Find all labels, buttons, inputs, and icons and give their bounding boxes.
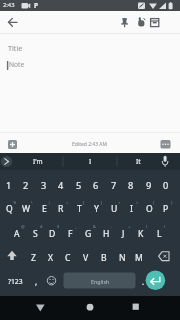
button[interactable]: [35, 170, 52, 195]
button[interactable]: [24, 244, 42, 269]
button[interactable]: [133, 13, 149, 33]
button[interactable]: [4, 12, 22, 32]
staticText: G: [85, 228, 92, 240]
button[interactable]: [158, 136, 174, 152]
button[interactable]: [18, 195, 35, 220]
button[interactable]: [28, 297, 52, 319]
button[interactable]: [153, 244, 175, 269]
staticText: It: [136, 157, 141, 166]
staticText: J: [122, 228, 125, 240]
button[interactable]: [1, 244, 23, 269]
staticText: @: [21, 224, 25, 229]
button[interactable]: Note: [9, 60, 109, 71]
staticText: P: [34, 1, 39, 10]
staticText: Z: [31, 252, 36, 264]
staticText: U: [111, 203, 118, 215]
staticText: Title: [8, 43, 23, 53]
staticText: 2:43: [3, 1, 15, 9]
staticText: \: [31, 200, 33, 205]
button[interactable]: [145, 270, 165, 290]
button[interactable]: [140, 170, 157, 195]
staticText: D: [49, 228, 56, 240]
staticText: }: [171, 200, 173, 205]
staticText: W: [22, 203, 30, 215]
button[interactable]: [78, 297, 102, 319]
staticText: X: [48, 252, 54, 264]
button[interactable]: [35, 195, 52, 220]
button[interactable]: [130, 244, 148, 269]
button[interactable]: [13, 153, 63, 170]
button[interactable]: [0, 195, 17, 220]
button[interactable]: [157, 153, 173, 170]
staticText: <: [118, 200, 121, 205]
button[interactable]: [147, 13, 163, 33]
staticText: B: [101, 252, 107, 264]
button[interactable]: [8, 219, 26, 244]
staticText: 2: [23, 179, 29, 192]
staticText: (: [146, 224, 148, 229]
staticText: |: [48, 200, 51, 205]
button[interactable]: [150, 219, 168, 244]
button[interactable]: [26, 219, 44, 244]
button[interactable]: [65, 153, 115, 170]
staticText: N: [119, 252, 126, 264]
button[interactable]: [77, 244, 95, 269]
button[interactable]: [0, 153, 13, 170]
button[interactable]: [124, 297, 148, 319]
button[interactable]: [105, 170, 122, 195]
button[interactable]: Title: [8, 43, 108, 55]
button[interactable]: [0, 170, 17, 195]
button[interactable]: [132, 219, 150, 244]
button[interactable]: [42, 244, 60, 269]
staticText: C: [65, 252, 71, 264]
button[interactable]: [136, 268, 150, 293]
staticText: K: [138, 228, 144, 240]
staticText: 4: [58, 179, 64, 192]
staticText: I'm: [33, 157, 43, 166]
button[interactable]: [122, 195, 139, 220]
staticText: -: [111, 224, 113, 229]
button[interactable]: [140, 195, 157, 220]
button[interactable]: [60, 244, 78, 269]
button[interactable]: [157, 195, 174, 220]
button[interactable]: [70, 195, 87, 220]
staticText: 5: [76, 179, 82, 192]
button[interactable]: [95, 244, 113, 269]
button[interactable]: [97, 219, 115, 244]
button[interactable]: [88, 170, 105, 195]
button[interactable]: [118, 153, 158, 170]
staticText: ?123: [8, 277, 23, 286]
button[interactable]: [53, 195, 70, 220]
button[interactable]: [53, 170, 70, 195]
staticText: 7: [111, 179, 117, 192]
staticText: 1: [6, 179, 12, 192]
button[interactable]: [61, 219, 79, 244]
button[interactable]: [64, 273, 136, 289]
staticText: $: [57, 224, 60, 229]
staticText: ]: [101, 200, 103, 205]
button[interactable]: [44, 268, 60, 293]
staticText: ,: [35, 276, 38, 287]
button[interactable]: [88, 195, 105, 220]
button[interactable]: [117, 13, 133, 33]
button[interactable]: [70, 170, 87, 195]
button[interactable]: [105, 195, 122, 220]
button[interactable]: [44, 219, 62, 244]
staticText: O: [146, 203, 153, 215]
button[interactable]: [18, 170, 35, 195]
button[interactable]: [157, 170, 174, 195]
staticText: %: [13, 200, 17, 205]
staticText: T: [77, 203, 82, 215]
staticText: .: [142, 276, 145, 287]
button[interactable]: [2, 268, 28, 293]
button[interactable]: [28, 268, 44, 293]
staticText: ): [164, 224, 166, 229]
button[interactable]: [114, 219, 132, 244]
button[interactable]: [122, 170, 139, 195]
button[interactable]: [5, 136, 21, 152]
staticText: I: [89, 157, 92, 166]
staticText: F: [68, 228, 73, 240]
button[interactable]: [113, 244, 131, 269]
button[interactable]: [79, 219, 97, 244]
staticText: S: [33, 228, 38, 240]
